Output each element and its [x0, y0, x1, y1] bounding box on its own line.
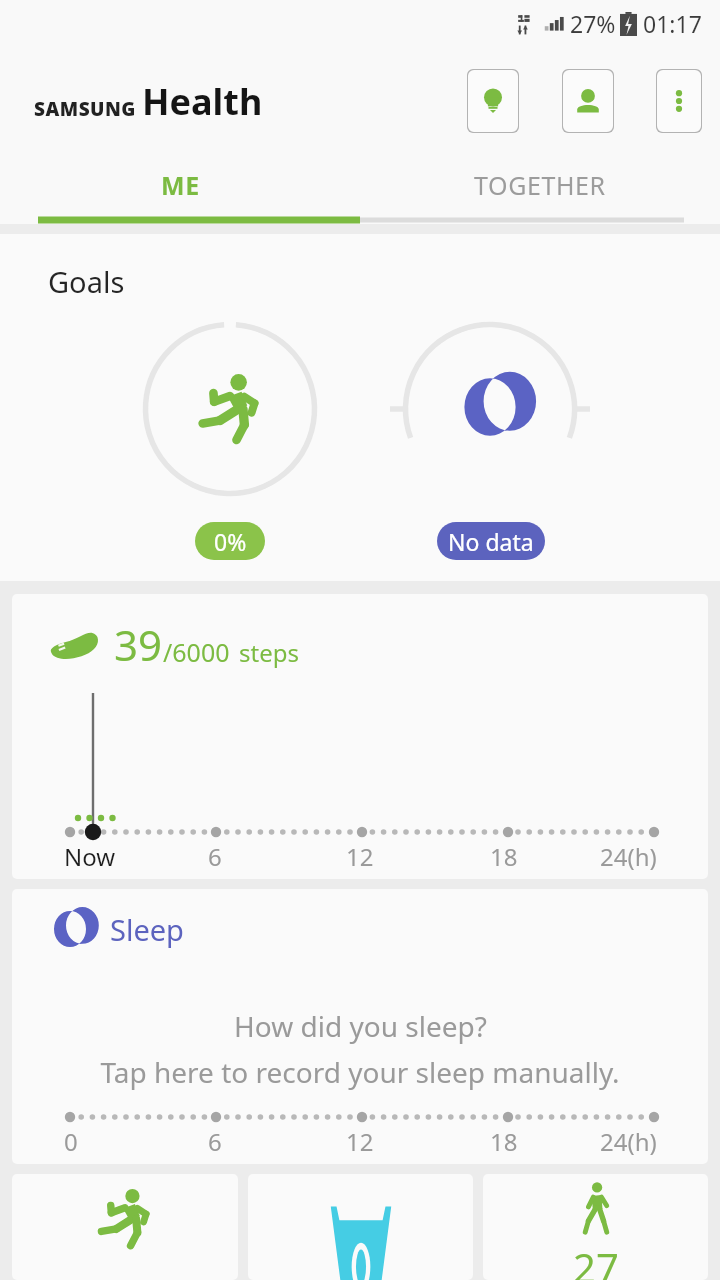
- staticText: 18: [490, 1125, 518, 1158]
- button[interactable]: Tips: [467, 69, 519, 133]
- button[interactable]: 39: [12, 594, 708, 879]
- button[interactable]: No data: [437, 522, 545, 560]
- staticText: How did you sleep?: [234, 1007, 487, 1045]
- staticText: 01:17: [643, 8, 702, 39]
- staticText: steps: [239, 636, 299, 669]
- button[interactable]: 27: [483, 1174, 708, 1280]
- staticText: Health: [142, 77, 263, 126]
- staticText: ME: [161, 168, 200, 202]
- staticText: 6: [208, 1125, 222, 1158]
- button[interactable]: ME: [0, 156, 360, 224]
- staticText: 24(h): [600, 1125, 657, 1158]
- staticText: 18: [490, 840, 518, 873]
- staticText: 0: [64, 1125, 78, 1158]
- staticText: Tap here to record your sleep manually.: [100, 1053, 620, 1091]
- staticText: Goals: [48, 262, 125, 301]
- button[interactable]: Goals: [0, 234, 720, 581]
- button[interactable]: Sleep: [12, 889, 708, 1164]
- staticText: SAMSUNG: [34, 96, 136, 122]
- button[interactable]: 0%: [195, 522, 265, 560]
- staticText: /6000: [163, 635, 230, 669]
- staticText: No data: [448, 526, 534, 557]
- staticText: 6: [208, 840, 222, 873]
- staticText: Now: [64, 840, 116, 873]
- staticText: 12: [346, 1125, 374, 1158]
- staticText: 39: [114, 616, 163, 673]
- button[interactable]: TOGETHER: [360, 156, 720, 224]
- staticText: 0%: [214, 526, 247, 557]
- staticText: Sleep: [110, 910, 184, 949]
- button[interactable]: Profile: [562, 69, 614, 133]
- staticText: 24(h): [600, 840, 657, 873]
- staticText: 12: [346, 840, 374, 873]
- staticText: 27: [573, 1240, 619, 1280]
- button[interactable]: [12, 1174, 238, 1280]
- staticText: TOGETHER: [474, 168, 606, 202]
- button[interactable]: [248, 1174, 473, 1280]
- staticText: 27%: [570, 8, 616, 39]
- button[interactable]: More options: [656, 69, 702, 133]
